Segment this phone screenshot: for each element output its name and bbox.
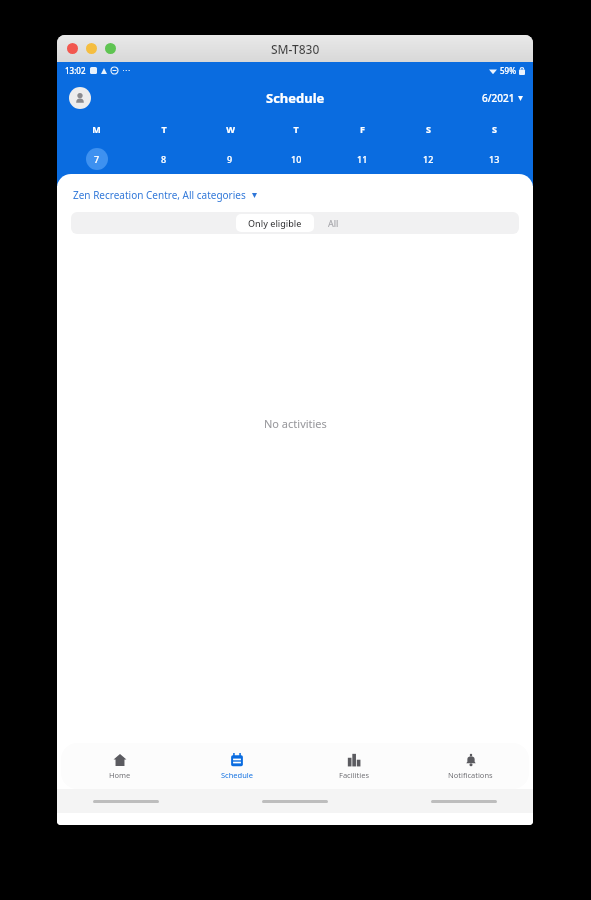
staticText: Notifications bbox=[448, 770, 493, 780]
button[interactable] bbox=[262, 800, 328, 803]
button[interactable]: Notifications bbox=[412, 743, 529, 789]
button[interactable]: Profile bbox=[69, 87, 91, 109]
button[interactable]: All bbox=[314, 214, 353, 232]
button[interactable] bbox=[105, 43, 116, 54]
staticText: 8 bbox=[161, 153, 167, 165]
staticText: Home bbox=[109, 770, 131, 780]
button[interactable]: 6/2021 bbox=[482, 91, 523, 105]
staticText: Facilities bbox=[339, 770, 369, 780]
staticText: 6/2021 bbox=[482, 91, 515, 105]
button[interactable]: 12 bbox=[417, 148, 439, 170]
staticText: 13 bbox=[489, 153, 500, 165]
staticText: 7 bbox=[94, 153, 100, 165]
staticText: 10 bbox=[291, 153, 302, 165]
staticText: 9 bbox=[227, 153, 233, 165]
button[interactable] bbox=[93, 800, 159, 803]
staticText: T bbox=[293, 123, 299, 135]
staticText: S bbox=[426, 123, 431, 135]
staticText: No activities bbox=[264, 416, 327, 431]
staticText: F bbox=[360, 123, 365, 135]
staticText: 12 bbox=[423, 153, 434, 165]
button[interactable]: 8 bbox=[153, 148, 175, 170]
staticText: 59% bbox=[500, 65, 516, 76]
staticText: Schedule bbox=[266, 89, 325, 107]
button[interactable]: 13 bbox=[483, 148, 505, 170]
button[interactable]: Only eligible bbox=[236, 214, 314, 232]
staticText: 11 bbox=[357, 153, 368, 165]
staticText: T bbox=[161, 123, 167, 135]
button[interactable]: Facilities bbox=[295, 743, 412, 789]
button[interactable]: Zen Recreation Centre, All categories bbox=[73, 188, 257, 202]
staticText: 13:02 bbox=[65, 65, 86, 76]
staticText: W bbox=[226, 123, 235, 135]
staticText: M bbox=[92, 123, 101, 135]
button[interactable]: 10 bbox=[285, 148, 307, 170]
button[interactable]: 11 bbox=[351, 148, 373, 170]
staticText: ⋯ bbox=[122, 66, 130, 75]
button[interactable] bbox=[86, 43, 97, 54]
button[interactable]: 7 bbox=[86, 148, 108, 170]
staticText: Only eligible bbox=[248, 217, 302, 229]
button[interactable]: 9 bbox=[219, 148, 241, 170]
staticText: S bbox=[492, 123, 497, 135]
staticText: Zen Recreation Centre, All categories bbox=[73, 188, 246, 202]
button[interactable]: Schedule bbox=[178, 743, 295, 789]
button[interactable]: Home bbox=[61, 743, 178, 789]
staticText: Schedule bbox=[221, 770, 253, 780]
button[interactable] bbox=[431, 800, 497, 803]
button[interactable] bbox=[67, 43, 78, 54]
staticText: SM-T830 bbox=[271, 41, 320, 57]
staticText: All bbox=[328, 217, 339, 229]
